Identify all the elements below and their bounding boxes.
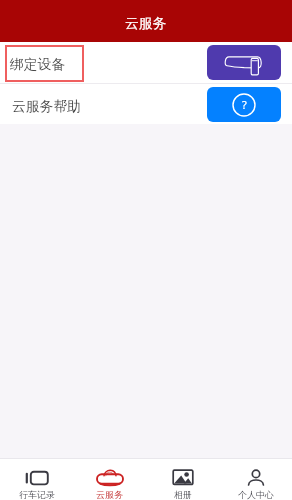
staticText: 个人中心 [238, 489, 274, 500]
button[interactable]: 帮助 [207, 87, 281, 122]
button[interactable]: 绑定设备 [207, 45, 281, 80]
button[interactable]: 行车记录 [0, 459, 73, 500]
button[interactable]: 个人中心 [219, 459, 292, 500]
button[interactable]: 云服务 [73, 459, 146, 500]
staticText: 云服务帮助 [12, 98, 81, 115]
staticText: 云服务 [96, 489, 123, 500]
staticText: ? [242, 97, 247, 112]
staticText: 绑定设备 [10, 56, 66, 73]
staticText: 行车记录 [19, 489, 55, 500]
staticText: 相册 [174, 489, 192, 500]
button[interactable]: 绑定设备 [0, 42, 292, 83]
button[interactable]: 相册 [146, 459, 219, 500]
button[interactable]: 云服务帮助 [0, 84, 292, 124]
staticText: 云服务 [125, 15, 167, 32]
